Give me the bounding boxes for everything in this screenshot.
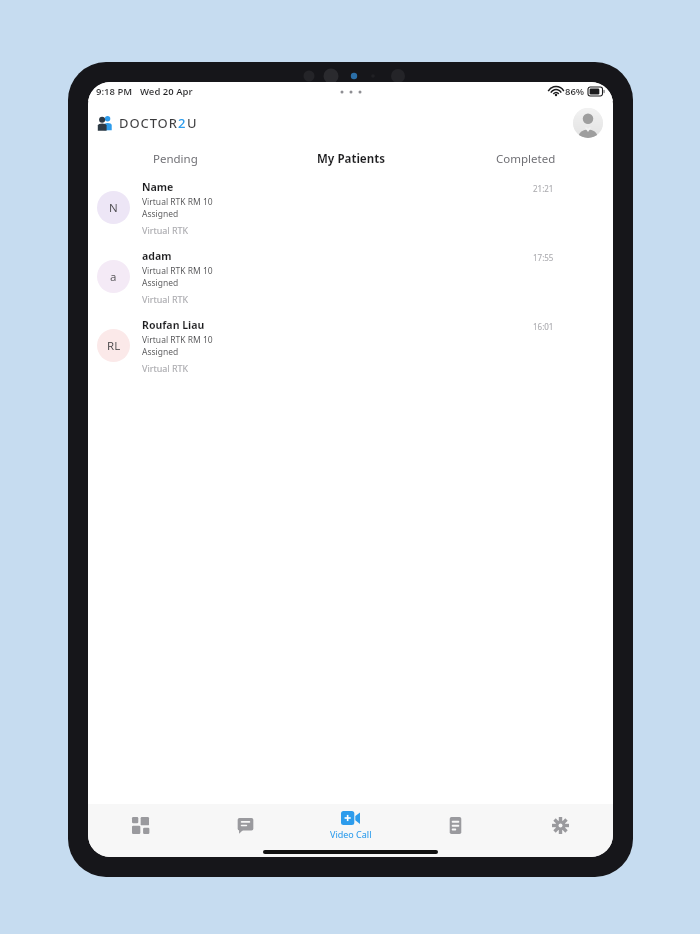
staticText: 86%: [565, 85, 585, 98]
staticText: My Patients: [317, 151, 385, 167]
staticText: a: [110, 269, 117, 285]
staticText: Virtual RTK: [142, 362, 189, 374]
staticText: Roufan Liau: [142, 318, 205, 332]
button[interactable]: Settings: [508, 804, 613, 846]
staticText: Virtual RTK: [142, 224, 189, 236]
button[interactable]: N: [88, 173, 613, 242]
staticText: adam: [142, 249, 172, 263]
staticText: Wed 20 Apr: [140, 85, 193, 98]
staticText: Virtual RTK RM 10: [142, 334, 213, 346]
button[interactable]: My Patients: [263, 145, 438, 173]
staticText: Assigned: [142, 277, 179, 289]
button[interactable]: Pending: [88, 145, 263, 173]
staticText: 9:18 PM: [96, 85, 133, 98]
staticText: Assigned: [142, 346, 179, 358]
staticText: Virtual RTK: [142, 293, 189, 305]
staticText: Completed: [496, 151, 556, 167]
button[interactable]: Messages: [193, 804, 298, 846]
staticText: Name: [142, 180, 174, 194]
button[interactable]: a: [88, 242, 613, 311]
button[interactable]: Dashboard: [88, 804, 193, 846]
staticText: Pending: [153, 151, 198, 167]
button[interactable]: Video Call: [298, 804, 403, 846]
staticText: 17:55: [533, 252, 554, 263]
staticText: 2: [178, 114, 187, 132]
staticText: RL: [107, 338, 121, 354]
button[interactable]: RL: [88, 311, 613, 380]
button[interactable]: Completed: [438, 145, 613, 173]
staticText: Assigned: [142, 208, 179, 220]
button[interactable]: DOCTOR: [97, 114, 198, 132]
staticText: Virtual RTK RM 10: [142, 265, 213, 277]
staticText: DOCTOR: [119, 114, 178, 132]
staticText: Virtual RTK RM 10: [142, 196, 213, 208]
button[interactable]: Records: [403, 804, 508, 846]
staticText: 21:21: [533, 183, 554, 194]
staticText: N: [109, 200, 118, 216]
button[interactable]: Profile: [573, 108, 603, 138]
staticText: Video Call: [330, 828, 372, 840]
staticText: 16:01: [533, 321, 554, 332]
staticText: U: [187, 114, 198, 132]
